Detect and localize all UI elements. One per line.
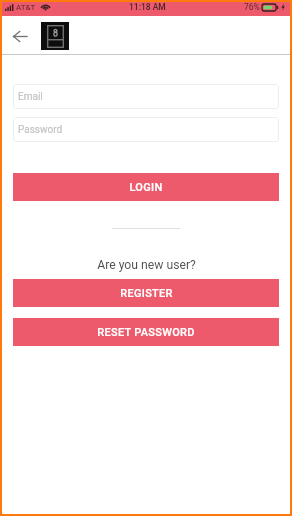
button[interactable]: Password: [13, 117, 279, 142]
button[interactable]: Email: [13, 84, 279, 109]
staticText: Email: [18, 91, 43, 103]
staticText: LOGIN: [129, 181, 163, 194]
button[interactable]: Back: [9, 25, 31, 47]
button[interactable]: LOGIN: [13, 173, 279, 201]
staticText: Are you new user?: [97, 258, 196, 272]
staticText: 76%: [244, 2, 260, 12]
staticText: RESET PASSWORD: [97, 326, 195, 339]
staticText: REGISTER: [120, 287, 173, 300]
button[interactable]: REGISTER: [13, 279, 279, 307]
staticText: Password: [18, 124, 63, 136]
staticText: AT&T: [16, 3, 36, 12]
button[interactable]: RESET PASSWORD: [13, 318, 279, 346]
button[interactable]: App logo: [41, 22, 69, 50]
staticText: 11:18 AM: [129, 2, 166, 12]
